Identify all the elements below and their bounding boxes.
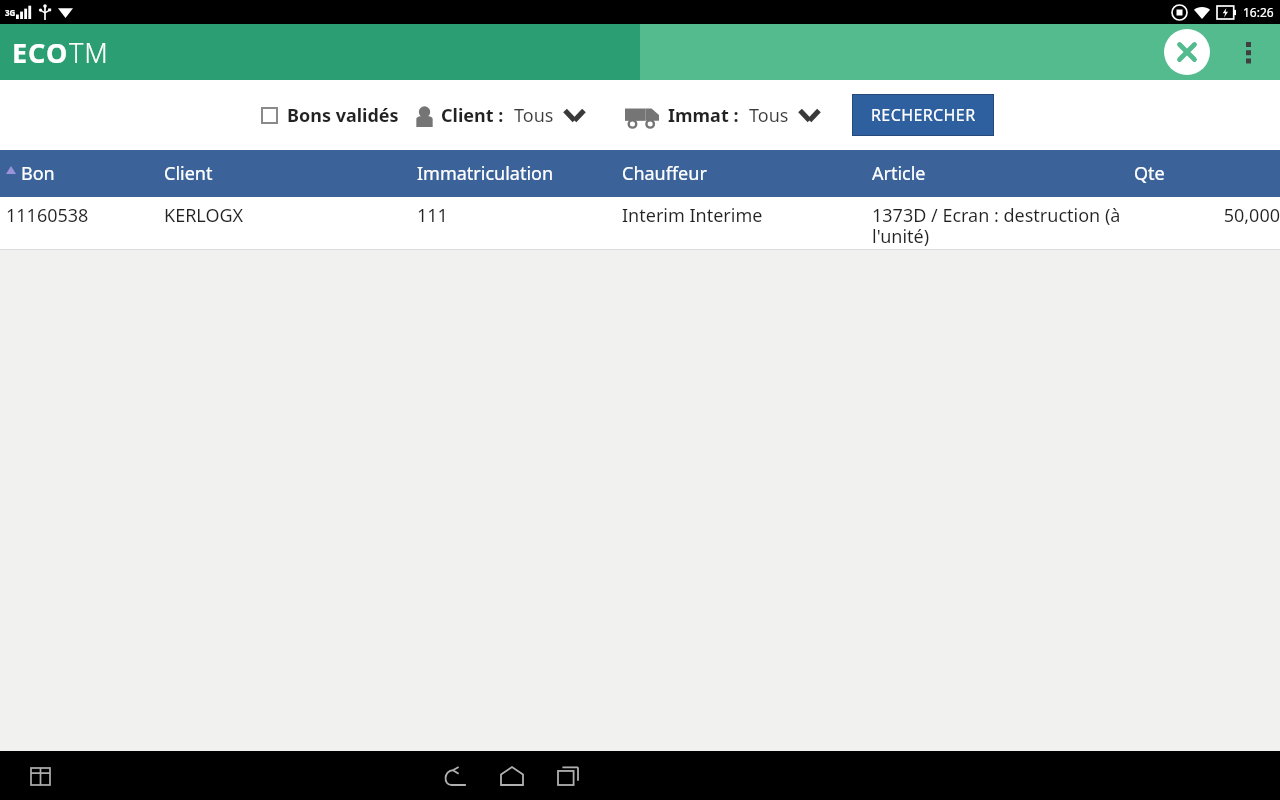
staticText: 111 xyxy=(417,203,448,228)
staticText: RECHERCHER xyxy=(871,104,976,126)
button[interactable]: Fermer xyxy=(1164,29,1210,75)
button[interactable]: Client : xyxy=(415,103,587,128)
button[interactable]: Bons validés xyxy=(261,103,399,128)
staticText: Bon xyxy=(21,161,55,186)
staticText: Interim Interime xyxy=(622,203,763,228)
staticText: Tous xyxy=(514,103,554,128)
button[interactable]: Immat : xyxy=(625,103,822,128)
staticText: Immatriculation xyxy=(417,161,554,186)
staticText: Qte xyxy=(1134,161,1165,186)
staticText: 50,000 xyxy=(1134,203,1280,228)
staticText: Client xyxy=(164,161,213,186)
staticText: Tous xyxy=(749,103,789,128)
staticText: Immat : xyxy=(668,103,739,128)
staticText: Article xyxy=(872,161,926,186)
button[interactable]: Accueil xyxy=(484,751,540,800)
staticText: TM xyxy=(69,34,109,71)
staticText: Bons validés xyxy=(287,103,399,128)
staticText: KERLOGX xyxy=(164,203,244,228)
staticText: 11160538 xyxy=(6,203,89,228)
staticText: Chauffeur xyxy=(622,161,707,186)
button[interactable]: Applications récentes xyxy=(540,751,596,800)
button[interactable]: Retour xyxy=(428,751,484,800)
button[interactable]: 11160538 xyxy=(0,197,1280,250)
staticText: 3G xyxy=(5,7,16,18)
staticText: ECO xyxy=(12,34,69,71)
button[interactable]: Bon xyxy=(0,150,1280,197)
button[interactable]: Écran partagé xyxy=(20,756,60,796)
button[interactable]: RECHERCHER xyxy=(852,94,994,136)
button[interactable]: Plus d'options xyxy=(1228,32,1268,72)
staticText: Client : xyxy=(441,103,504,128)
staticText: 1373D / Ecran : destruction (à l'unité) xyxy=(872,203,1134,249)
staticText: 16:26 xyxy=(1243,4,1274,20)
